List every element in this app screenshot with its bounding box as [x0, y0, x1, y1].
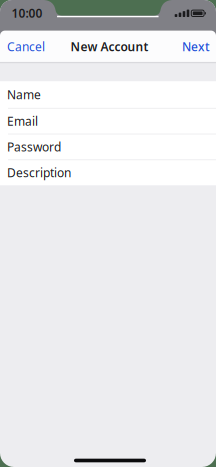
button[interactable]: Cancel [3, 35, 49, 58]
staticText: New Account [70, 39, 148, 54]
staticText: Next [182, 39, 210, 54]
staticText: Description [7, 165, 71, 180]
staticText: Email [7, 113, 38, 129]
staticText: Cancel [7, 39, 45, 54]
button[interactable]: Description [0, 160, 216, 185]
button[interactable]: Password [0, 134, 216, 160]
staticText: Password [7, 139, 61, 155]
staticText: 10:00 [11, 5, 42, 21]
button[interactable]: Email [0, 108, 216, 134]
staticText: Name [7, 87, 41, 103]
button[interactable]: Next [178, 35, 214, 58]
button[interactable]: Name [0, 81, 216, 108]
